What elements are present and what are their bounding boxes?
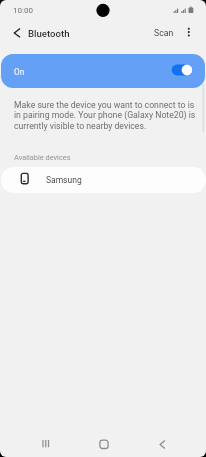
staticText: 10:00 — [13, 6, 33, 15]
staticText: Make sure the device you want to connect… — [14, 100, 196, 146]
button[interactable]: Scan — [150, 24, 178, 42]
staticText: Bluetooth — [28, 28, 70, 39]
button[interactable]: Recents — [28, 430, 64, 456]
button[interactable]: On — [1, 54, 205, 88]
button[interactable]: Back — [144, 430, 180, 456]
staticText: Scan — [154, 28, 174, 38]
button[interactable]: Samsung — [1, 167, 206, 193]
button[interactable]: Home — [86, 430, 122, 456]
staticText: Samsung — [46, 175, 82, 185]
staticText: On — [14, 67, 25, 77]
staticText: Available devices — [14, 153, 71, 162]
button[interactable]: Navigate up — [7, 23, 27, 43]
button[interactable]: More options — [180, 23, 198, 41]
